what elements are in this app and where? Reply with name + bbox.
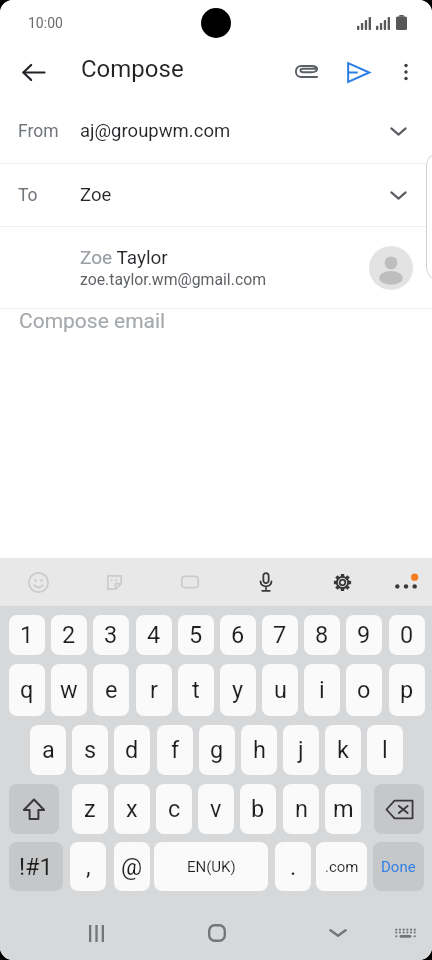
- staticText: @: [121, 853, 143, 881]
- button[interactable]: m: [325, 784, 361, 834]
- button[interactable]: 2: [51, 615, 87, 655]
- button[interactable]: More options: [386, 52, 426, 92]
- button[interactable]: 9: [346, 615, 382, 655]
- button[interactable]: t: [178, 664, 214, 716]
- button[interactable]: r: [136, 664, 172, 716]
- button[interactable]: q: [9, 664, 45, 716]
- staticText: a: [42, 736, 55, 764]
- button[interactable]: @: [114, 842, 150, 891]
- button[interactable]: v: [198, 784, 234, 834]
- button[interactable]: 8: [304, 615, 340, 655]
- staticText: g: [210, 736, 224, 764]
- button[interactable]: Keyboard settings: [318, 558, 366, 606]
- staticText: 7: [273, 621, 287, 649]
- button[interactable]: .: [275, 842, 311, 891]
- staticText: o: [357, 676, 371, 704]
- button[interactable]: s: [72, 725, 108, 775]
- button[interactable]: l: [367, 725, 403, 775]
- staticText: d: [125, 736, 139, 764]
- staticText: 5: [189, 621, 203, 649]
- button[interactable]: Expand to field: [380, 177, 416, 213]
- button[interactable]: f: [157, 725, 193, 775]
- button[interactable]: !#1: [9, 842, 63, 891]
- button[interactable]: h: [241, 725, 277, 775]
- staticText: To: [18, 185, 38, 206]
- staticText: 9: [357, 621, 371, 649]
- button[interactable]: y: [220, 664, 256, 716]
- button[interactable]: 0: [389, 615, 425, 655]
- staticText: From: [18, 121, 59, 142]
- button[interactable]: 3: [93, 615, 129, 655]
- staticText: v: [210, 795, 222, 823]
- staticText: 6: [231, 621, 245, 649]
- staticText: i: [319, 676, 325, 704]
- button[interactable]: Zoe Taylor: [0, 227, 432, 308]
- button[interactable]: e: [93, 664, 129, 716]
- button[interactable]: c: [156, 784, 192, 834]
- staticText: ,: [86, 853, 91, 881]
- staticText: c: [168, 795, 181, 823]
- button[interactable]: GIF: [166, 558, 214, 606]
- button[interactable]: Recent apps: [72, 909, 120, 957]
- button[interactable]: w: [51, 664, 87, 716]
- staticText: Done: [381, 858, 416, 876]
- button[interactable]: p: [389, 664, 425, 716]
- button[interactable]: d: [114, 725, 150, 775]
- staticText: r: [150, 676, 158, 704]
- button[interactable]: o: [346, 664, 382, 716]
- button[interactable]: .com: [316, 842, 367, 891]
- staticText: 2: [62, 621, 76, 649]
- button[interactable]: Emoji: [14, 558, 62, 606]
- button[interactable]: Shift: [9, 784, 59, 834]
- button[interactable]: n: [283, 784, 319, 834]
- button[interactable]: x: [114, 784, 150, 834]
- button[interactable]: b: [240, 784, 276, 834]
- button[interactable]: More options: [384, 558, 428, 606]
- staticText: x: [126, 795, 138, 823]
- staticText: n: [295, 795, 308, 823]
- staticText: 10:00: [28, 15, 63, 31]
- staticText: !#1: [19, 853, 53, 881]
- button[interactable]: a: [30, 725, 66, 775]
- button[interactable]: 6: [220, 615, 256, 655]
- staticText: m: [333, 795, 354, 823]
- button[interactable]: Hide keyboard: [314, 909, 362, 957]
- button[interactable]: Back: [9, 48, 57, 96]
- button[interactable]: g: [199, 725, 235, 775]
- staticText: j: [298, 736, 304, 764]
- button[interactable]: Stickers: [90, 558, 138, 606]
- button[interactable]: Home: [193, 909, 241, 957]
- staticText: 0: [400, 621, 414, 649]
- staticText: k: [337, 736, 349, 764]
- staticText: q: [20, 676, 34, 704]
- button[interactable]: u: [262, 664, 298, 716]
- button[interactable]: Attach file: [284, 49, 328, 93]
- button[interactable]: 1: [9, 615, 45, 655]
- staticText: .com: [325, 858, 359, 876]
- staticText: p: [400, 676, 414, 704]
- button[interactable]: z: [72, 784, 108, 834]
- staticText: w: [60, 676, 78, 704]
- button[interactable]: Send: [336, 50, 380, 94]
- staticText: s: [84, 736, 97, 764]
- staticText: y: [232, 676, 244, 704]
- staticText: Zoe: [80, 184, 112, 206]
- button[interactable]: k: [325, 725, 361, 775]
- button[interactable]: i: [304, 664, 340, 716]
- button[interactable]: 4: [136, 615, 172, 655]
- button[interactable]: Change keyboard: [381, 909, 429, 957]
- staticText: 4: [147, 621, 161, 649]
- button[interactable]: Voice input: [242, 558, 290, 606]
- staticText: e: [105, 676, 118, 704]
- staticText: Compose email: [19, 309, 166, 334]
- button[interactable]: Done: [373, 842, 424, 891]
- staticText: 1: [20, 621, 34, 649]
- button[interactable]: 5: [178, 615, 214, 655]
- button[interactable]: 7: [262, 615, 298, 655]
- button[interactable]: j: [283, 725, 319, 775]
- button[interactable]: EN(UK): [154, 842, 268, 891]
- staticText: u: [274, 676, 287, 704]
- button[interactable]: Backspace: [374, 784, 424, 834]
- button[interactable]: ,: [70, 842, 106, 891]
- button[interactable]: Expand from field: [380, 113, 416, 149]
